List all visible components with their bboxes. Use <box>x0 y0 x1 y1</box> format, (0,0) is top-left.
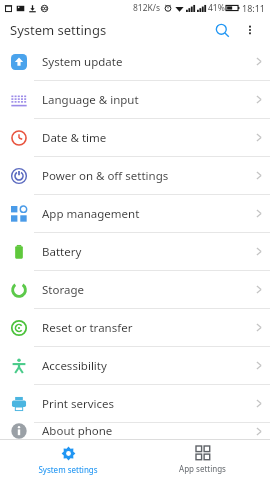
staticText: About phone <box>42 423 113 439</box>
button[interactable]: Power on & off settings <box>0 157 270 194</box>
staticText: Battery <box>42 244 82 260</box>
staticText: Power on & off settings <box>42 168 169 184</box>
staticText: 812K/s <box>133 2 161 14</box>
staticText: App management <box>42 206 140 222</box>
staticText: System settings <box>10 21 107 39</box>
staticText: Accessibility <box>42 358 107 374</box>
button[interactable]: Search <box>210 18 234 42</box>
button[interactable]: More options <box>238 18 262 42</box>
staticText: 41% <box>208 2 225 14</box>
button[interactable]: Date & time <box>0 119 270 156</box>
button[interactable]: About phone <box>0 423 270 439</box>
button[interactable]: System update <box>0 43 270 80</box>
staticText: System update <box>42 54 123 70</box>
button[interactable]: System settings <box>0 440 135 480</box>
button[interactable]: Storage <box>0 271 270 308</box>
button[interactable]: Print services <box>0 385 270 422</box>
staticText: Storage <box>42 282 84 298</box>
button[interactable]: App settings <box>135 440 270 480</box>
staticText: Language & input <box>42 92 139 108</box>
staticText: System settings <box>38 464 98 475</box>
button[interactable]: App management <box>0 195 270 232</box>
button[interactable]: Accessibility <box>0 347 270 384</box>
staticText: Reset or transfer <box>42 320 133 336</box>
button[interactable]: Battery <box>0 233 270 270</box>
button[interactable]: Reset or transfer <box>0 309 270 346</box>
staticText: Print services <box>42 396 114 412</box>
button[interactable]: Language & input <box>0 81 270 118</box>
staticText: App settings <box>179 463 226 474</box>
staticText: 18:11 <box>242 2 266 14</box>
staticText: Date & time <box>42 130 107 146</box>
